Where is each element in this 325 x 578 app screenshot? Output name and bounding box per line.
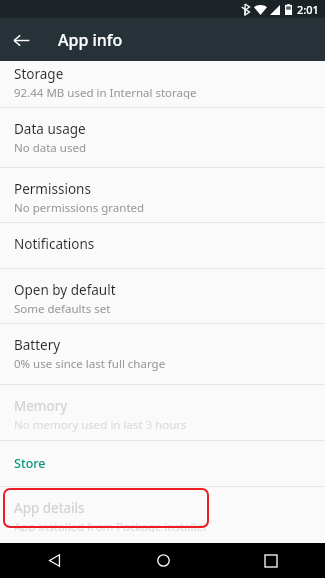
staticText: Battery: [14, 336, 61, 354]
staticText: App details: [14, 499, 85, 517]
button[interactable]: Notifications: [0, 223, 325, 268]
button[interactable]: Home: [109, 543, 217, 578]
button[interactable]: Store: [0, 441, 325, 486]
staticText: No data used: [14, 140, 86, 156]
staticText: Memory: [14, 397, 68, 415]
staticText: Store: [14, 455, 46, 472]
button[interactable]: Memory: [0, 385, 325, 440]
staticText: 2:01: [297, 2, 319, 17]
staticText: Storage: [14, 65, 64, 83]
staticText: App info: [58, 29, 123, 51]
button[interactable]: Data usage: [0, 108, 325, 167]
staticText: No memory used in last 3 hours: [14, 417, 187, 433]
button[interactable]: Back: [0, 19, 42, 61]
staticText: 0% use since last full charge: [14, 356, 166, 372]
staticText: Data usage: [14, 120, 86, 138]
staticText: No permissions granted: [14, 200, 145, 216]
staticText: Open by default: [14, 281, 116, 299]
staticText: App installed from Package installer: [14, 519, 208, 532]
staticText: Some defaults set: [14, 301, 111, 317]
button[interactable]: Storage: [0, 61, 325, 107]
staticText: 92.44 MB used in Internal storage: [14, 85, 197, 99]
staticText: Notifications: [14, 235, 95, 253]
button[interactable]: App details: [0, 487, 325, 532]
button[interactable]: Back: [0, 543, 109, 578]
button[interactable]: Permissions: [0, 168, 325, 222]
button[interactable]: Battery: [0, 324, 325, 384]
button[interactable]: Recent apps: [217, 543, 325, 578]
button[interactable]: Open by default: [0, 269, 325, 323]
staticText: Permissions: [14, 180, 91, 198]
